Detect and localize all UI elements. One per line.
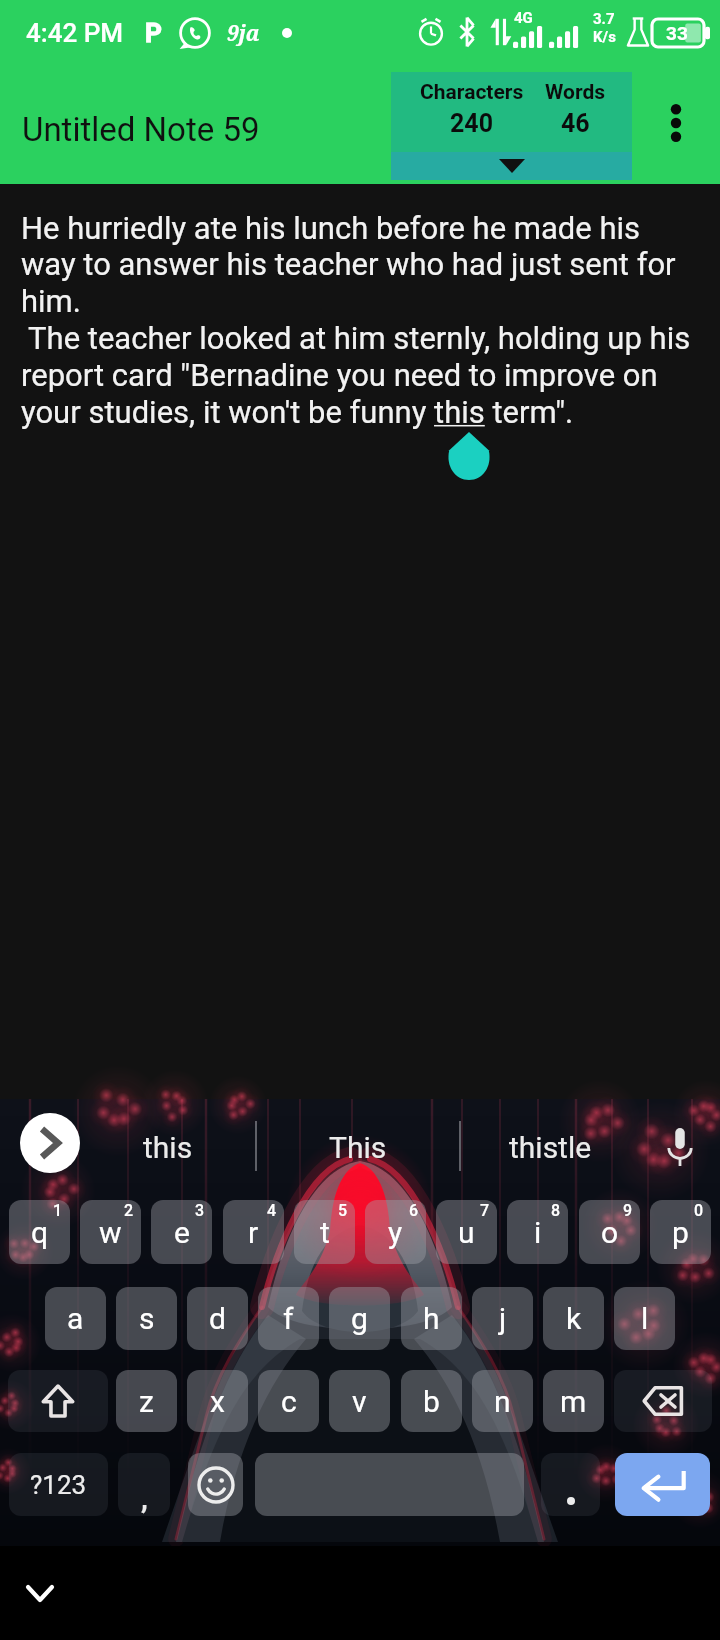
- staticText: 4G: [514, 9, 533, 27]
- staticText: 4:42 PM: [26, 18, 124, 48]
- staticText: n: [494, 1384, 511, 1419]
- staticText: 4: [267, 1201, 277, 1220]
- button[interactable]: Enter: [615, 1453, 710, 1516]
- button[interactable]: o: [579, 1200, 640, 1264]
- button[interactable]: c: [258, 1370, 319, 1432]
- button[interactable]: r: [223, 1200, 284, 1264]
- staticText: 9: [623, 1201, 633, 1220]
- staticText: r: [248, 1215, 259, 1250]
- button[interactable]: Expand toolbar: [20, 1113, 80, 1173]
- staticText: a: [67, 1301, 84, 1336]
- button[interactable]: Backspace: [614, 1370, 712, 1432]
- button[interactable]: Space: [255, 1453, 524, 1516]
- button[interactable]: This: [256, 1099, 460, 1195]
- button[interactable]: q: [9, 1200, 70, 1264]
- staticText: 3: [195, 1201, 205, 1220]
- button[interactable]: h: [401, 1287, 462, 1350]
- staticText: g: [351, 1301, 368, 1336]
- staticText: thistle: [509, 1130, 592, 1165]
- staticText: b: [423, 1384, 440, 1419]
- staticText: 7: [480, 1201, 490, 1220]
- button[interactable]: t: [294, 1200, 355, 1264]
- staticText: this: [143, 1130, 193, 1165]
- staticText: ,: [141, 1482, 148, 1515]
- button[interactable]: thistle: [460, 1099, 640, 1195]
- button[interactable]: Collapse counter: [391, 152, 632, 180]
- staticText: 3.7: [593, 10, 615, 28]
- button[interactable]: w: [80, 1200, 141, 1264]
- button[interactable]: u: [436, 1200, 497, 1264]
- button[interactable]: f: [258, 1287, 319, 1350]
- staticText: o: [601, 1215, 619, 1250]
- button[interactable]: Emoji: [188, 1453, 243, 1516]
- staticText: u: [458, 1215, 475, 1250]
- button[interactable]: g: [329, 1287, 390, 1350]
- staticText: 9ja: [227, 19, 260, 48]
- staticText: Untitled Note 59: [22, 110, 260, 149]
- staticText: Characters: [420, 80, 524, 105]
- staticText: f: [283, 1301, 294, 1336]
- button[interactable]: n: [472, 1370, 533, 1432]
- staticText: 5: [338, 1201, 348, 1220]
- staticText: 1: [53, 1201, 63, 1220]
- button[interactable]: a: [45, 1287, 106, 1350]
- staticText: l: [641, 1301, 649, 1336]
- staticText: 6: [409, 1201, 419, 1220]
- button[interactable]: m: [543, 1370, 604, 1432]
- staticText: c: [281, 1384, 297, 1419]
- button[interactable]: e: [151, 1200, 212, 1264]
- staticText: q: [31, 1215, 49, 1250]
- staticText: y: [388, 1215, 403, 1250]
- staticText: x: [210, 1384, 225, 1419]
- button[interactable]: Hide keyboard: [6, 1557, 74, 1629]
- staticText: z: [139, 1384, 154, 1419]
- button[interactable]: this: [80, 1099, 256, 1195]
- button[interactable]: p: [650, 1200, 711, 1264]
- staticText: m: [560, 1384, 587, 1419]
- button[interactable]: d: [187, 1287, 248, 1350]
- staticText: P: [145, 18, 162, 48]
- button[interactable]: k: [543, 1287, 604, 1350]
- staticText: He hurriedly ate his lunch before he mad…: [21, 210, 701, 431]
- staticText: 46: [561, 109, 590, 138]
- staticText: This: [329, 1130, 387, 1165]
- staticText: w: [99, 1215, 122, 1250]
- button[interactable]: z: [116, 1370, 177, 1432]
- button[interactable]: ?123: [9, 1453, 108, 1516]
- staticText: ?123: [30, 1470, 87, 1500]
- button[interactable]: More options: [646, 62, 706, 184]
- button[interactable]: i: [507, 1200, 568, 1264]
- button[interactable]: Voice input: [640, 1099, 720, 1195]
- staticText: 33: [666, 22, 688, 44]
- staticText: K/s: [593, 28, 616, 46]
- button[interactable]: j: [472, 1287, 533, 1350]
- staticText: p: [672, 1215, 689, 1250]
- staticText: j: [499, 1301, 507, 1336]
- button[interactable]: s: [116, 1287, 177, 1350]
- button[interactable]: Shift: [8, 1370, 108, 1432]
- button[interactable]: b: [401, 1370, 462, 1432]
- staticText: t: [320, 1215, 330, 1250]
- button[interactable]: v: [329, 1370, 390, 1432]
- staticText: k: [566, 1301, 582, 1336]
- staticText: h: [423, 1301, 440, 1336]
- staticText: v: [352, 1384, 367, 1419]
- staticText: e: [174, 1215, 190, 1250]
- staticText: s: [139, 1301, 155, 1336]
- button[interactable]: ,: [118, 1453, 170, 1516]
- staticText: 8: [551, 1201, 561, 1220]
- button[interactable]: [541, 1453, 600, 1516]
- staticText: Words: [545, 80, 606, 105]
- button[interactable]: l: [614, 1287, 675, 1350]
- staticText: 0: [694, 1201, 704, 1220]
- button[interactable]: x: [187, 1370, 248, 1432]
- staticText: i: [534, 1215, 542, 1250]
- staticText: 240: [450, 109, 494, 138]
- staticText: d: [209, 1301, 226, 1336]
- button[interactable]: y: [365, 1200, 426, 1264]
- staticText: 2: [124, 1201, 134, 1220]
